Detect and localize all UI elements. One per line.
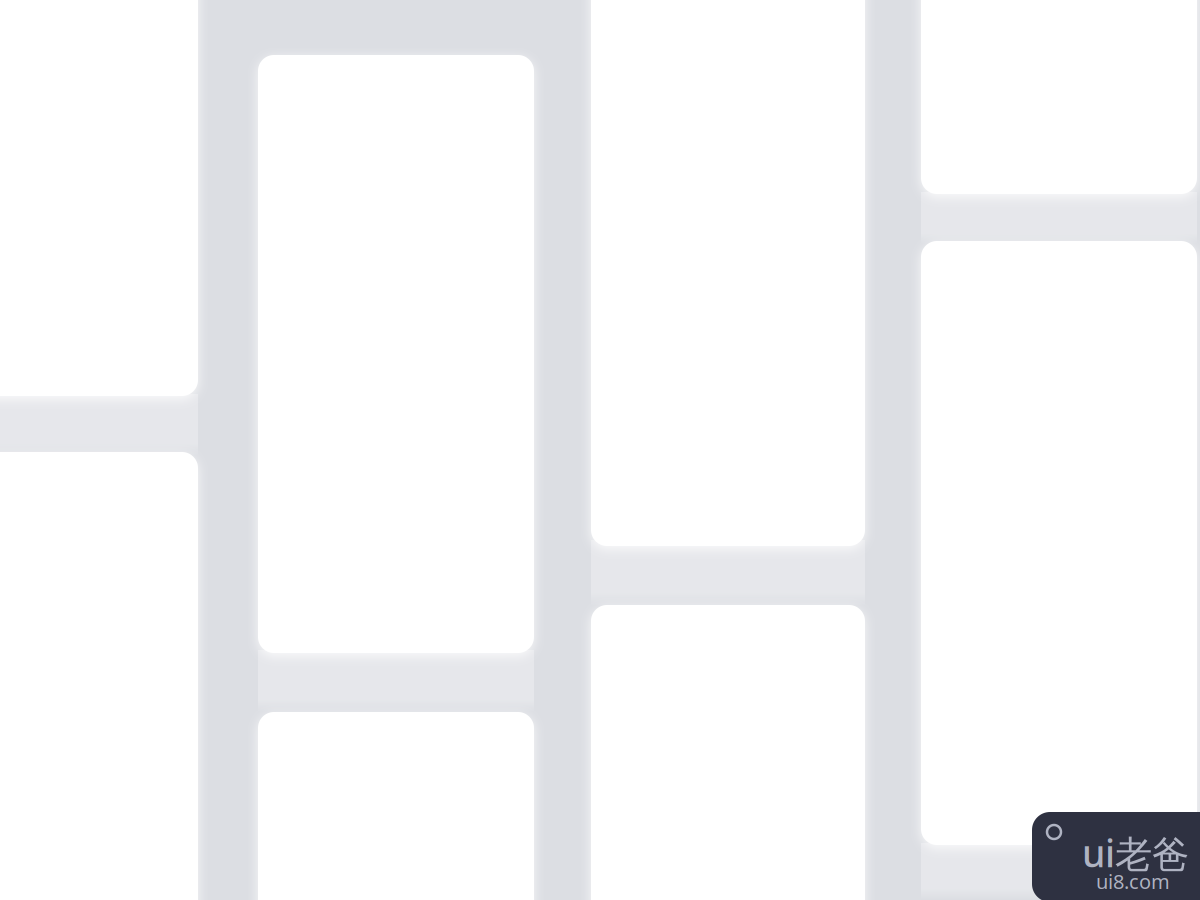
staticText: ui8.com bbox=[1096, 868, 1170, 895]
staticText: ui老爸 bbox=[1082, 828, 1189, 878]
button[interactable]: ui8.com bbox=[1032, 812, 1200, 900]
button[interactable]: Screen 8 bbox=[921, 241, 1197, 845]
